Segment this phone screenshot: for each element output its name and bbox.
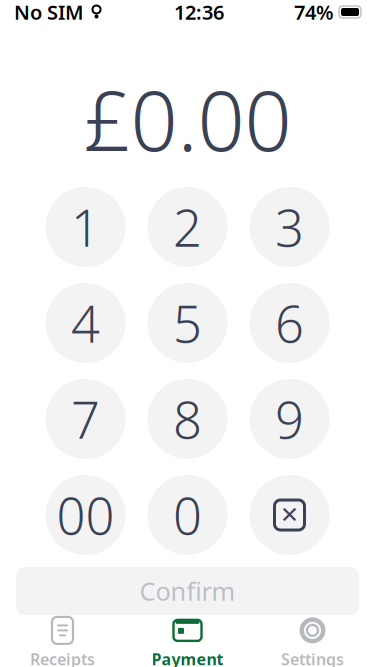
- staticText: 0: [173, 481, 202, 549]
- button[interactable]: 6: [249, 283, 329, 363]
- button[interactable]: 0: [147, 475, 227, 555]
- staticText: 9: [275, 385, 304, 453]
- staticText: ✕: [280, 502, 299, 528]
- staticText: Settings: [281, 648, 344, 667]
- staticText: 7: [71, 385, 100, 453]
- button[interactable]: 3: [249, 187, 329, 267]
- staticText: 1: [71, 193, 100, 261]
- staticText: 4: [71, 289, 100, 357]
- button[interactable]: Confirm: [16, 567, 359, 615]
- button[interactable]: 7: [45, 379, 125, 459]
- button[interactable]: 1: [45, 187, 125, 267]
- staticText: 5: [173, 289, 202, 357]
- staticText: 6: [275, 289, 304, 357]
- button[interactable]: 9: [249, 379, 329, 459]
- staticText: £0.00: [83, 64, 291, 174]
- button[interactable]: 5: [147, 283, 227, 363]
- staticText: 00: [56, 481, 114, 549]
- button[interactable]: 2: [147, 187, 227, 267]
- button[interactable]: Settings: [250, 610, 375, 667]
- button[interactable]: Payment: [125, 610, 250, 667]
- staticText: 2: [173, 193, 202, 261]
- button[interactable]: 00: [45, 475, 125, 555]
- button[interactable]: 8: [147, 379, 227, 459]
- button[interactable]: Receipts: [0, 610, 125, 667]
- staticText: Confirm: [139, 574, 235, 608]
- staticText: 74%: [294, 0, 334, 25]
- staticText: No SIM: [14, 0, 84, 25]
- staticText: Payment: [151, 648, 223, 667]
- staticText: Receipts: [30, 648, 95, 667]
- button[interactable]: Delete: [249, 475, 329, 555]
- staticText: 8: [173, 385, 202, 453]
- button[interactable]: 4: [45, 283, 125, 363]
- staticText: 3: [275, 193, 304, 261]
- staticText: 12:36: [174, 0, 224, 25]
